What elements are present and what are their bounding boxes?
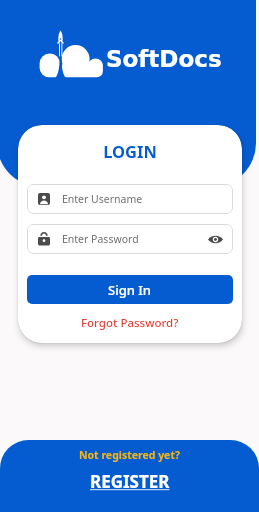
staticText: Not registered yet? <box>79 448 180 462</box>
staticText: SoftDocs <box>106 46 222 73</box>
staticText: Enter Username <box>62 192 143 206</box>
button[interactable]: Enter Username <box>27 184 233 214</box>
button[interactable]: Enter Password <box>27 224 233 254</box>
button[interactable]: Sign In <box>27 275 233 304</box>
staticText: Enter Password <box>62 232 139 246</box>
staticText: Sign In <box>108 281 152 299</box>
button[interactable]: Show password <box>207 231 223 247</box>
staticText: LOGIN <box>18 140 242 162</box>
button[interactable]: Forgot Password? <box>18 315 242 331</box>
staticText: REGISTER <box>90 470 170 493</box>
button[interactable]: REGISTER <box>90 470 170 493</box>
staticText: Forgot Password? <box>81 315 179 331</box>
